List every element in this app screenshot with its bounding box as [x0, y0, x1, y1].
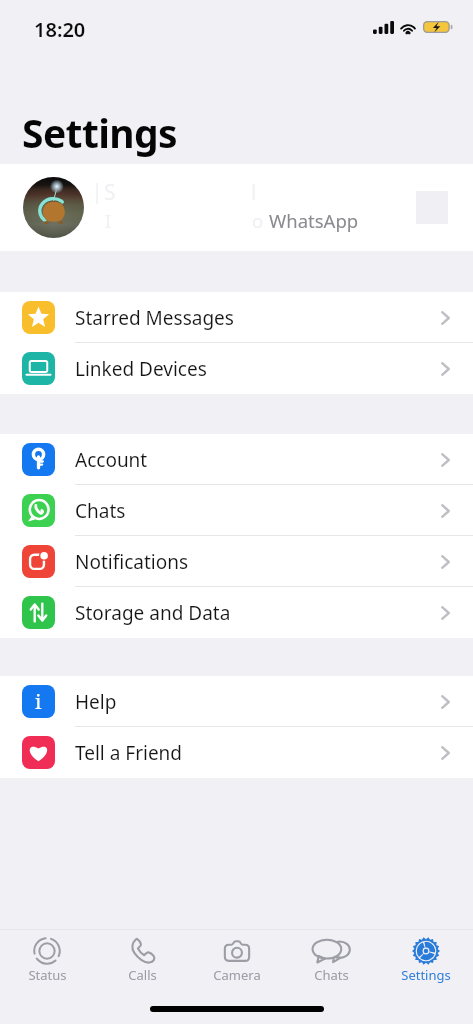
- staticText: Settings: [22, 106, 178, 159]
- staticText: Calls: [128, 966, 157, 984]
- button[interactable]: Account: [0, 434, 473, 485]
- staticText: Camera: [213, 966, 261, 984]
- staticText: Help: [75, 689, 117, 715]
- button[interactable]: Calls: [95, 930, 189, 989]
- staticText: l: [251, 178, 257, 207]
- staticText: Status: [28, 966, 67, 984]
- other: Settings: [411, 936, 441, 966]
- staticText: I: [105, 208, 112, 233]
- button[interactable]: Starred Messages: [0, 292, 473, 343]
- staticText: Chats: [75, 498, 126, 524]
- other: Chats: [312, 936, 350, 966]
- button[interactable]: Chats: [284, 930, 378, 989]
- button[interactable]: Tell a Friend: [0, 727, 473, 778]
- button[interactable]: i: [0, 676, 473, 727]
- button[interactable]: Storage and Data: [0, 587, 473, 638]
- other: Calls: [127, 936, 157, 966]
- staticText: Notifications: [75, 549, 189, 575]
- button[interactable]: Chats: [0, 485, 473, 536]
- staticText: 18:20: [34, 16, 86, 43]
- staticText: Chats: [314, 966, 349, 984]
- staticText: i: [35, 688, 42, 715]
- staticText: WhatsApp: [269, 208, 359, 233]
- other: Status: [32, 936, 62, 966]
- staticText: Tell a Friend: [75, 740, 183, 766]
- staticText: Starred Messages: [75, 305, 234, 331]
- staticText: Linked Devices: [75, 356, 207, 382]
- other: Camera: [222, 936, 252, 966]
- staticText: Settings: [401, 966, 451, 984]
- button[interactable]: S: [0, 164, 473, 251]
- button[interactable]: Linked Devices: [0, 343, 473, 394]
- button[interactable]: Notifications: [0, 536, 473, 587]
- button[interactable]: Camera: [190, 930, 284, 989]
- staticText: Account: [75, 447, 148, 473]
- staticText: Storage and Data: [75, 600, 231, 626]
- staticText: o: [252, 208, 264, 233]
- staticText: S: [104, 178, 116, 207]
- button[interactable]: Status: [0, 930, 94, 989]
- button[interactable]: Settings: [379, 930, 473, 989]
